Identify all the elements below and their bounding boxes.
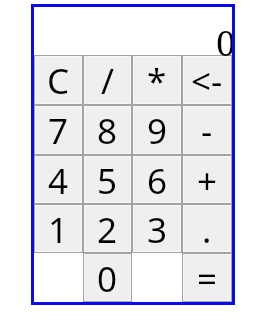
staticText: .: [202, 206, 212, 251]
staticText: =: [197, 255, 218, 300]
button[interactable]: 0: [83, 253, 132, 302]
button[interactable]: 7: [34, 105, 83, 155]
button[interactable]: 4: [34, 155, 83, 204]
button[interactable]: 8: [83, 105, 132, 155]
staticText: 0: [216, 19, 236, 67]
button[interactable]: 5: [83, 155, 132, 204]
button[interactable]: +: [182, 155, 232, 204]
staticText: 1: [48, 206, 69, 251]
staticText: 9: [147, 107, 168, 153]
button[interactable]: <-: [182, 55, 232, 105]
button[interactable]: *: [132, 55, 182, 105]
staticText: *: [147, 57, 167, 103]
staticText: -: [201, 107, 213, 153]
button[interactable]: /: [83, 55, 132, 105]
button[interactable]: 2: [83, 204, 132, 253]
button[interactable]: 6: [132, 155, 182, 204]
staticText: <-: [191, 57, 223, 103]
staticText: /: [101, 57, 115, 103]
staticText: +: [197, 157, 218, 202]
button[interactable]: =: [182, 253, 232, 302]
button[interactable]: 3: [132, 204, 182, 253]
button[interactable]: C: [34, 55, 83, 105]
staticText: 5: [97, 157, 118, 202]
staticText: 0: [97, 255, 118, 300]
staticText: 6: [147, 157, 168, 202]
button[interactable]: 1: [34, 204, 83, 253]
button[interactable]: .: [182, 204, 232, 253]
button[interactable]: 9: [132, 105, 182, 155]
staticText: 7: [48, 107, 69, 153]
staticText: C: [47, 57, 70, 103]
staticText: 2: [97, 206, 118, 251]
staticText: 3: [147, 206, 168, 251]
button[interactable]: -: [182, 105, 232, 155]
staticText: 4: [48, 157, 69, 202]
staticText: 8: [97, 107, 118, 153]
